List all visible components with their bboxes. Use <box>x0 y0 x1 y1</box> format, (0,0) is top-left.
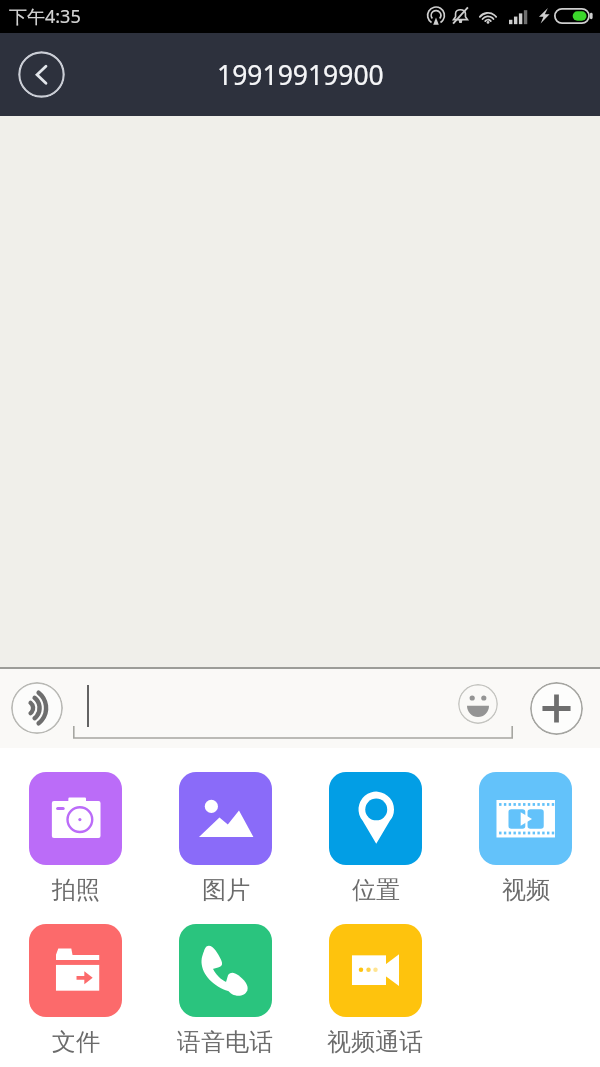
button[interactable]: 文件 <box>29 924 122 1057</box>
staticText: 位置 <box>352 875 400 905</box>
staticText: 文件 <box>52 1027 100 1057</box>
staticText: 19919919900 <box>217 57 384 93</box>
button[interactable]: 视频 <box>479 772 572 905</box>
button[interactable]: Back <box>18 51 65 98</box>
button[interactable]: More options <box>530 682 583 735</box>
staticText: 图片 <box>202 875 250 905</box>
button[interactable]: 位置 <box>329 772 422 905</box>
staticText: 视频通话 <box>327 1027 423 1057</box>
button[interactable]: 拍照 <box>29 772 122 905</box>
staticText: 拍照 <box>52 875 100 905</box>
staticText: 语音电话 <box>177 1027 273 1057</box>
staticText: 下午4:35 <box>9 4 81 29</box>
button[interactable]: Emoji <box>458 684 498 724</box>
button[interactable]: 视频通话 <box>327 924 423 1057</box>
button[interactable]: 语音电话 <box>177 924 273 1057</box>
staticText: 视频 <box>502 875 550 905</box>
button[interactable]: Voice input <box>11 682 63 734</box>
button[interactable]: 图片 <box>179 772 272 905</box>
